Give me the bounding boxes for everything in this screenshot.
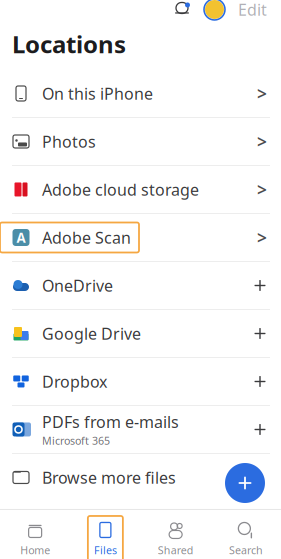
- button[interactable]: Shared: [140, 516, 211, 559]
- button[interactable]: Adobe cloud storage: [0, 166, 281, 213]
- button[interactable]: OneDrive: [0, 262, 281, 309]
- staticText: >: [257, 178, 267, 201]
- button[interactable]: Edit: [230, 0, 275, 26]
- button[interactable]: Browse more files: [0, 454, 281, 501]
- staticText: Adobe cloud storage: [42, 179, 199, 200]
- staticText: Google Drive: [42, 323, 141, 344]
- staticText: >: [257, 226, 267, 249]
- button[interactable]: Search: [211, 516, 281, 559]
- button[interactable]: Home: [0, 516, 70, 559]
- staticText: Locations: [12, 28, 126, 60]
- button[interactable]: Photos: [0, 118, 281, 165]
- staticText: Search: [229, 543, 263, 557]
- staticText: Edit: [238, 0, 267, 20]
- staticText: Microsoft 365: [42, 433, 110, 448]
- staticText: >: [257, 82, 267, 105]
- button[interactable]: On this iPhone: [0, 70, 281, 117]
- button[interactable]: Notifications: [165, 0, 199, 25]
- staticText: OneDrive: [42, 275, 113, 296]
- staticText: Browse more files: [42, 467, 176, 488]
- button[interactable]: Google Drive: [0, 310, 281, 357]
- staticText: Home: [20, 543, 50, 557]
- staticText: Files: [94, 543, 117, 557]
- staticText: Shared: [158, 543, 194, 557]
- staticText: On this iPhone: [42, 83, 153, 104]
- button[interactable]: Dropbox: [0, 358, 281, 405]
- button[interactable]: Files: [70, 516, 140, 559]
- staticText: PDFs from e-mails: [42, 411, 179, 432]
- staticText: Photos: [42, 131, 96, 152]
- staticText: Dropbox: [42, 371, 107, 392]
- button[interactable]: PDFs from e-mails: [0, 406, 281, 453]
- staticText: >: [257, 130, 267, 153]
- button[interactable]: Account: [199, 0, 230, 25]
- staticText: Adobe Scan: [42, 227, 131, 248]
- button[interactable]: A: [0, 214, 281, 261]
- button[interactable]: Create: [225, 463, 265, 503]
- staticText: A: [16, 229, 25, 246]
